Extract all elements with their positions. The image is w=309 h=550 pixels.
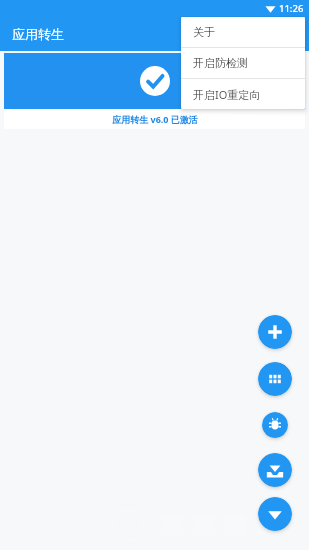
button[interactable]: 应用转生 v6.0 已激活 [4,109,305,129]
staticText: 应用转生 [12,26,64,42]
button[interactable] [4,53,305,109]
staticText: 应用转生 v6.0 已激活 [112,113,198,125]
staticText: 开启IO重定向 [193,87,261,102]
staticText: 11:26 [279,2,304,15]
button[interactable]: 开启防检测 [181,48,305,78]
staticText: 开启防检测 [193,56,248,70]
button[interactable]: All apps [258,362,292,396]
button[interactable]: Install [258,453,292,487]
button[interactable]: Debug [262,412,288,438]
button[interactable]: 开启IO重定向 [181,79,305,109]
staticText: 关于 [193,25,215,39]
button[interactable]: Add [258,315,292,349]
button[interactable]: 关于 [181,17,305,47]
button[interactable]: More [258,497,292,531]
